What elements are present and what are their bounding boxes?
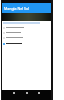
button[interactable]: [2, 41, 51, 46]
button[interactable]: [2, 35, 51, 40]
button[interactable]: [2, 25, 51, 30]
staticText: Mangia Nel Sol: [4, 6, 30, 11]
button[interactable]: [2, 30, 51, 35]
